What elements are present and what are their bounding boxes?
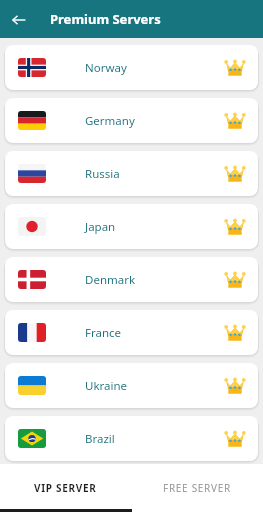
button[interactable]: Brazil xyxy=(5,416,258,461)
button[interactable]: Japan xyxy=(5,204,258,249)
other: Premium xyxy=(224,430,246,448)
button[interactable]: VIP SERVER xyxy=(0,464,131,512)
other: Premium xyxy=(224,218,246,236)
button[interactable]: FREE SERVER xyxy=(131,464,263,512)
staticText: Brazil xyxy=(85,431,115,447)
other: Premium xyxy=(224,165,246,183)
staticText: Russia xyxy=(85,166,120,182)
staticText: Premium Servers xyxy=(50,10,161,28)
button[interactable]: France xyxy=(5,310,258,355)
button[interactable]: Ukraine xyxy=(5,363,258,408)
other: Premium xyxy=(224,112,246,130)
staticText: Germany xyxy=(85,113,135,129)
other: Premium xyxy=(224,377,246,395)
other: Premium xyxy=(224,59,246,77)
button[interactable]: Norway xyxy=(5,45,258,90)
staticText: Norway xyxy=(85,60,127,76)
button[interactable]: Russia xyxy=(5,151,258,196)
staticText: Denmark xyxy=(85,272,136,288)
staticText: Ukraine xyxy=(85,378,128,394)
button[interactable]: Germany xyxy=(5,98,258,143)
staticText: FREE SERVER xyxy=(163,481,231,495)
button[interactable]: Back xyxy=(7,8,30,31)
other: Premium xyxy=(224,324,246,342)
other: Premium xyxy=(224,271,246,289)
staticText: Japan xyxy=(85,219,116,235)
button[interactable]: Denmark xyxy=(5,257,258,302)
staticText: VIP SERVER xyxy=(34,481,97,495)
staticText: France xyxy=(85,325,122,341)
